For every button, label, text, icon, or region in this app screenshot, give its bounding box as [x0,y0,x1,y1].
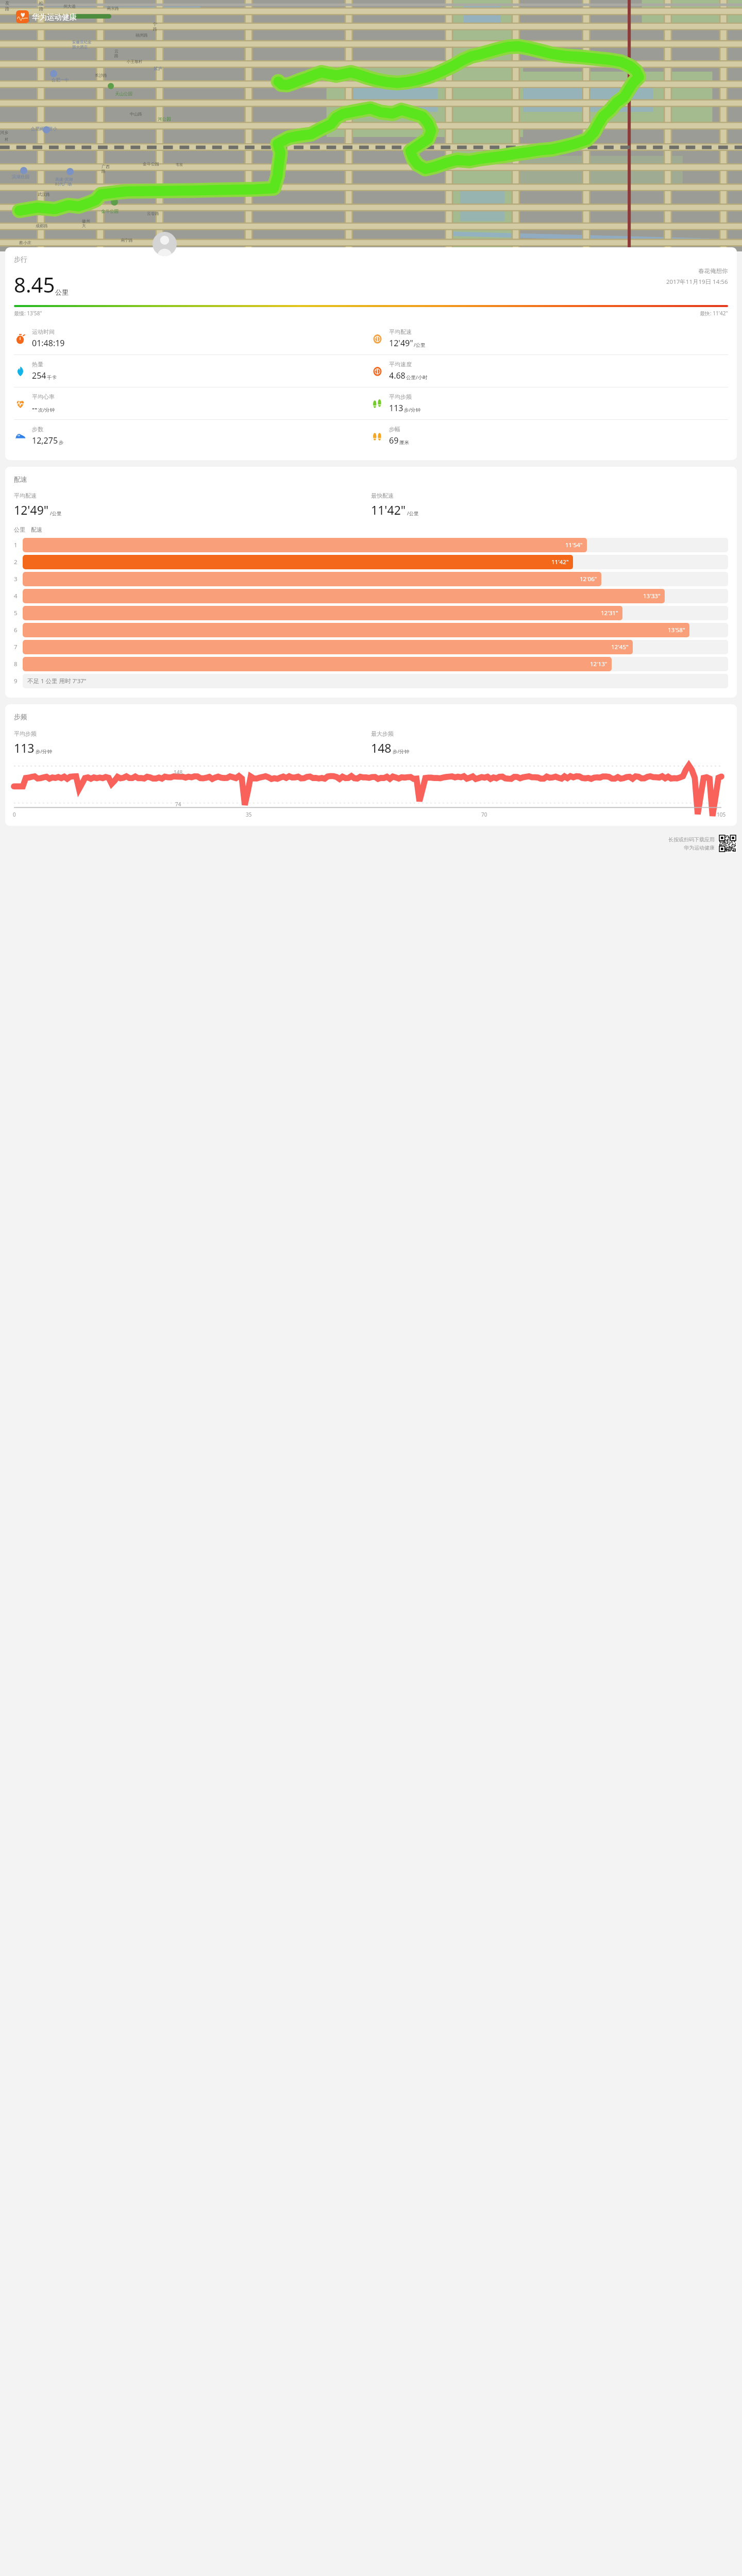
staticText: 松 路 [39,1,44,11]
button[interactable]: 下载二维码 [718,834,737,853]
button[interactable]: 热量 [14,361,371,381]
staticText: 高速·滨湖 时代广场 [55,176,73,187]
staticText: 11'42" [371,502,406,518]
staticText: 徽州 大 [82,218,90,229]
staticText: 步/分钟 [393,748,410,755]
staticText: 平均步频 [14,730,37,737]
staticText: 步幅 [389,426,400,433]
button[interactable]: 平均速度 [371,361,728,381]
staticText: 武汉路 [38,192,50,197]
staticText: 12'45" [611,643,629,651]
staticText: 云 路 [114,48,119,59]
staticText: 州大道 [63,4,76,9]
staticText: 步行 [14,255,27,263]
staticText: 滨湖欣园 [12,174,29,180]
staticText: 厘米 [399,439,409,446]
staticText: 148 [174,769,183,776]
staticText: 村 [5,137,9,142]
staticText: 成都路 [36,223,48,228]
staticText: 6 [14,626,18,634]
staticText: 12'13" [590,660,608,668]
staticText: 紫蓬路 [18,17,30,22]
staticText: 中山路 [130,111,142,116]
staticText: 2 [14,558,18,566]
staticText: 韦前 [176,162,183,167]
button[interactable]: 步数 [14,426,371,446]
staticText: 69 [389,435,399,446]
staticText: /公里 [50,510,62,517]
button[interactable]: 1 [14,538,728,552]
staticText: 平均配速 [14,492,37,499]
staticText: 配速 [14,475,27,483]
staticText: 9 [14,677,18,685]
staticText: 运动时间 [32,328,55,335]
staticText: 平均步频 [389,393,412,400]
staticText: 8 [14,660,18,668]
staticText: 步 [59,439,64,446]
staticText: 不足 1 公里 用时 7'37" [27,677,87,685]
staticText: 金斗公园 [143,161,159,166]
staticText: 12'49" [14,502,49,518]
staticText: 平均配速 [389,328,412,335]
staticText: 福州路 [136,32,148,38]
staticText: 35 [246,811,252,818]
staticText: 1 [14,541,18,549]
staticText: 2017年11月19日 14:56 [666,278,728,286]
staticText: 春花俺想你 [698,267,728,275]
button[interactable]: 平均配速 [371,328,728,349]
staticText: 安徽世纪金 源大酒店 [72,40,92,49]
staticText: 148 [371,740,392,756]
staticText: 最慢: 13'58" [14,310,42,317]
staticText: 紫庐 [154,66,162,72]
staticText: 云谷路 [147,211,159,216]
button[interactable]: 2 [14,555,728,569]
staticText: 105 [717,811,726,818]
staticText: 宁 路 [153,22,157,32]
button[interactable]: 平均步频 [371,393,728,414]
staticText: 12'06" [580,575,597,583]
button[interactable]: 5 [14,606,728,620]
button[interactable]: 3 [14,572,728,586]
staticText: 113 [14,740,35,756]
staticText: 步/分钟 [404,406,421,413]
staticText: 步/分钟 [36,748,53,755]
button[interactable]: 步幅 [371,426,728,446]
staticText: 12'49" [389,337,413,349]
staticText: 4 [14,592,18,600]
button[interactable]: 8 [14,657,728,671]
staticText: 公里/小时 [406,374,428,381]
staticText: 长按或扫码下载应用 [668,836,715,843]
button[interactable]: 用户头像 [153,232,177,256]
staticText: 平均心率 [32,393,55,400]
staticText: -- [32,402,38,414]
staticText: 4.68 [389,370,406,381]
button[interactable]: 4 [14,589,728,603]
button[interactable]: 6 [14,623,728,637]
staticText: 华为运动健康 [32,12,77,22]
staticText: 友 路 [5,1,10,11]
staticText: 河公园 [158,116,171,122]
staticText: 113 [389,402,403,414]
staticText: 最快: 11'42" [700,310,728,317]
staticText: 70 [481,811,487,818]
staticText: 平均速度 [389,361,412,368]
staticText: /公里 [414,342,426,348]
button[interactable]: 平均心率 [14,393,371,414]
staticText: 河乡 [0,130,8,135]
staticText: 小王墩村 [127,59,142,64]
staticText: 254 [32,370,46,381]
staticText: 13'58" [668,626,685,634]
staticText: 13'33" [643,592,661,600]
staticText: 12'31" [601,609,618,617]
button[interactable]: 7 [14,640,728,654]
button[interactable]: 运动时间 [14,328,371,349]
button[interactable]: 9 [14,674,728,688]
staticText: 蔡小庄 [19,240,31,245]
staticText: 3 [14,575,18,583]
staticText: 12,275 [32,435,58,446]
staticText: 11'54" [565,541,583,549]
button[interactable]: 华为运动健康 [16,10,77,23]
staticText: 最快配速 [371,492,394,499]
staticText: 南宁路 [121,238,133,243]
staticText: /公里 [407,510,419,517]
